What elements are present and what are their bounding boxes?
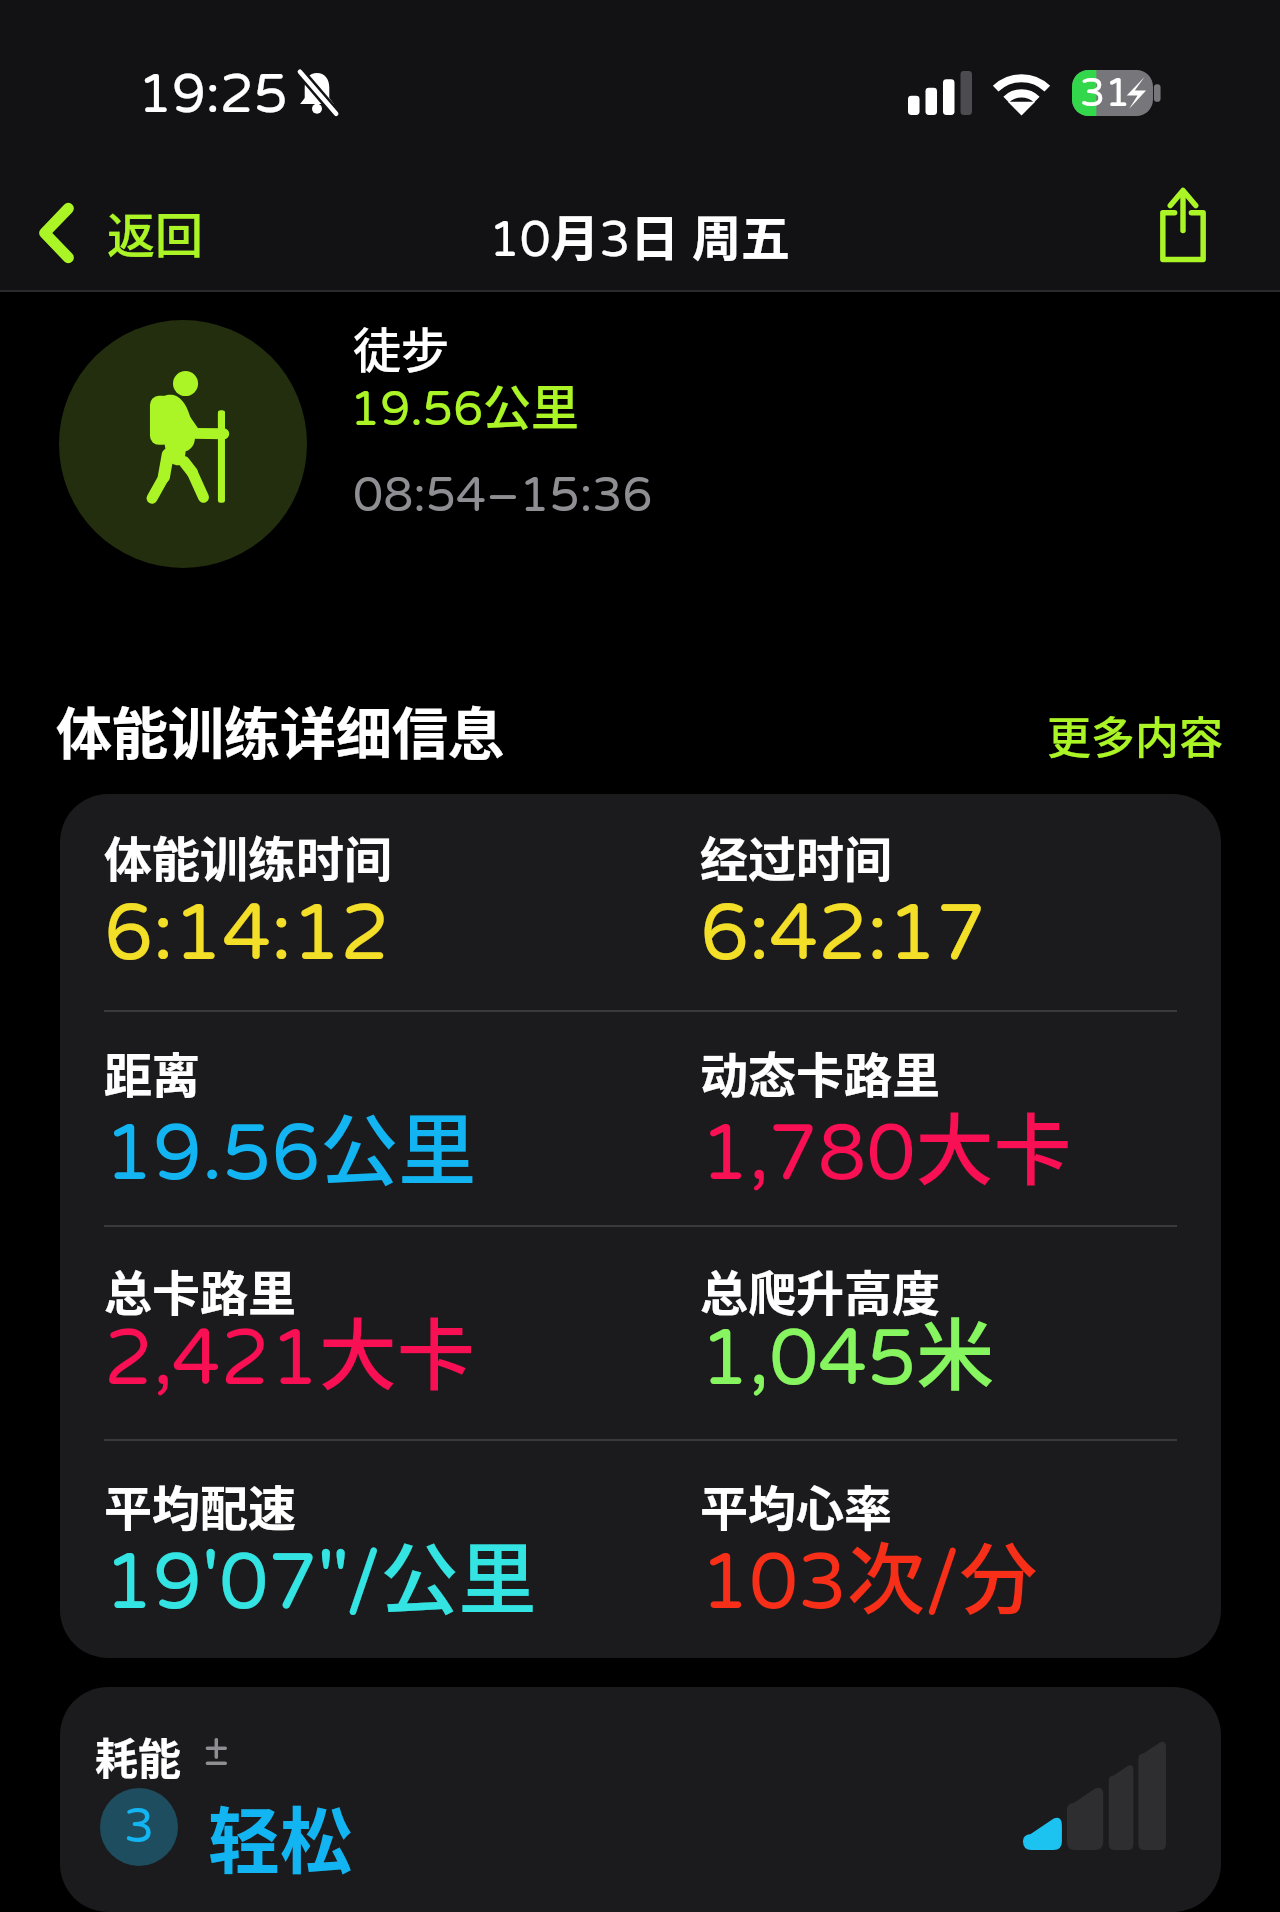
staticText: 返回 xyxy=(107,197,204,267)
staticText: 6:14:12 xyxy=(104,887,390,981)
staticText: 体能训练时间 xyxy=(104,821,393,891)
staticText: 总卡路里 xyxy=(104,1255,297,1325)
staticText: 10月3日 周五 xyxy=(489,199,791,270)
button[interactable]: 更多内容 xyxy=(1047,703,1223,767)
staticText: 19.56公里 xyxy=(104,1089,477,1202)
staticText: 19.56公里 xyxy=(350,369,580,439)
staticText: 体能训练详细信息 xyxy=(56,689,504,770)
staticText: 103次/分 xyxy=(700,1518,1038,1631)
staticText: 耗能 xyxy=(95,1725,181,1787)
button[interactable]: Share xyxy=(1142,174,1224,274)
staticText: 总爬升高度 xyxy=(700,1255,941,1325)
staticText: 1,045米 xyxy=(700,1294,995,1407)
staticText: 6:42:17 xyxy=(700,887,986,981)
staticText: 更多内容 xyxy=(1047,703,1223,767)
staticText: 1,780大卡 xyxy=(700,1089,1072,1202)
staticText: 3 xyxy=(124,1798,155,1856)
staticText: 经过时间 xyxy=(700,821,893,891)
staticText: 19:25 xyxy=(138,62,288,127)
staticText: 动态卡路里 xyxy=(700,1037,941,1107)
button[interactable]: 返回 xyxy=(18,182,224,284)
staticText: 平均心率 xyxy=(700,1470,893,1540)
staticText: 距离 xyxy=(104,1037,201,1107)
staticText: 19'07"/公里 xyxy=(104,1518,537,1631)
staticText: ± xyxy=(203,1725,230,1778)
staticText: 2,421大卡 xyxy=(104,1294,475,1407)
staticText: 平均配速 xyxy=(104,1470,297,1540)
staticText: 08:54–15:36 xyxy=(353,467,653,525)
staticText: 轻松 xyxy=(208,1783,353,1887)
staticText: 徒步 xyxy=(353,312,450,382)
staticText: 31 xyxy=(1080,69,1131,117)
